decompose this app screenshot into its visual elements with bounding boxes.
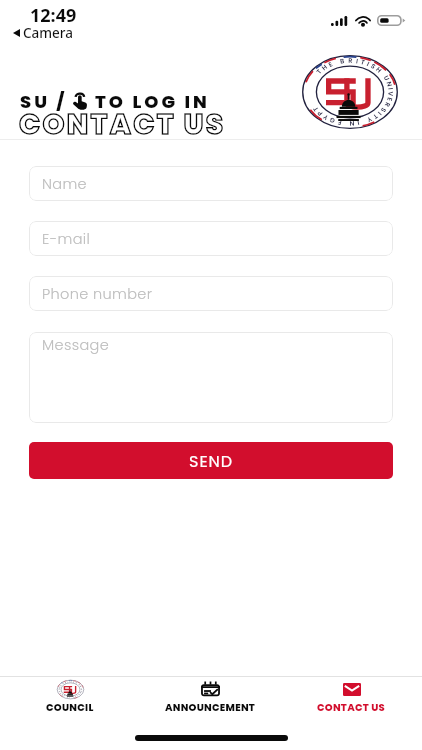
staticText: ANNOUNCEMENT — [165, 700, 256, 714]
staticText: Name — [42, 174, 87, 194]
staticText: Camera — [23, 24, 73, 42]
staticText: COUNCIL — [46, 700, 94, 714]
button[interactable]: Phone number — [29, 276, 393, 311]
staticText: Message — [42, 335, 110, 355]
button[interactable]: E-mail — [29, 221, 393, 256]
button[interactable]: Message — [29, 332, 393, 423]
button[interactable]: SEND — [29, 442, 393, 479]
staticText: E-mail — [42, 229, 91, 249]
button[interactable]: Contact us — [281, 677, 422, 714]
button[interactable]: Camera — [13, 24, 73, 42]
button[interactable]: Name — [29, 166, 393, 201]
button[interactable]: Announcement — [140, 677, 281, 714]
staticText: CONTACT US — [317, 700, 386, 714]
staticText: SEND — [189, 450, 234, 472]
button[interactable]: Council — [0, 677, 140, 714]
staticText: Phone number — [42, 284, 153, 304]
staticText: 12:49 — [30, 3, 77, 28]
staticText: CONTACT US — [19, 105, 226, 144]
staticText: TO LOG IN — [95, 89, 210, 114]
staticText: SU / — [20, 89, 68, 114]
